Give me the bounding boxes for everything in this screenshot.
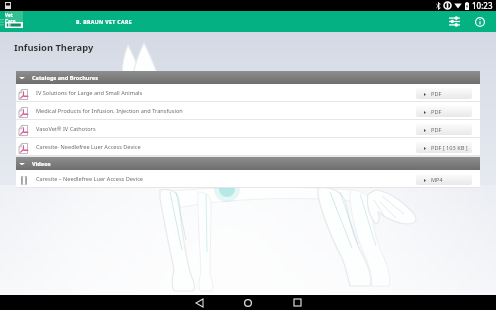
button[interactable]: Filter [444, 11, 464, 32]
button[interactable]: MP4 [416, 174, 472, 185]
button[interactable]: Home [233, 295, 263, 310]
button[interactable]: IV Solutions for Large and Small Animals [16, 84, 480, 102]
button[interactable]: PDF [416, 88, 472, 99]
staticText: Medical Products for Infusion, Injection… [36, 107, 183, 115]
button[interactable]: Videos [16, 157, 480, 170]
staticText: Caresite – Needlefree Luer Access Device [36, 175, 143, 183]
staticText: B. BRAUN VET CARE [76, 18, 132, 25]
staticText: Catalogs and Brochures [32, 74, 98, 82]
staticText: MP4 [431, 176, 443, 184]
button[interactable]: Menu [0, 16, 5, 28]
staticText: Videos [32, 160, 51, 168]
button[interactable]: Caresite – Needlefree Luer Access Device [16, 170, 480, 188]
staticText: VasoVet® IV Cathotors [36, 125, 96, 133]
button[interactable]: Info [470, 11, 490, 32]
button[interactable]: Caresite- Needlefree Luer Access Device [16, 138, 480, 156]
staticText: Vet Care [5, 12, 23, 23]
button[interactable]: Back [184, 295, 214, 310]
staticText: PDF [ 103 KB ] [431, 144, 468, 152]
button[interactable]: Recent apps [282, 295, 312, 310]
button[interactable]: VasoVet® IV Cathotors [16, 120, 480, 138]
button[interactable]: Medical Products for Infusion, Injection… [16, 102, 480, 120]
button[interactable]: PDF [416, 124, 472, 135]
staticText: 10:23 [472, 0, 493, 11]
staticText: IV Solutions for Large and Small Animals [36, 89, 143, 97]
staticText: PDF [431, 90, 442, 98]
staticText: PDF [431, 108, 442, 116]
button[interactable]: PDF [ 103 KB ] [416, 142, 472, 153]
button[interactable]: B Braun Vet Care logo [5, 11, 23, 32]
button[interactable]: PDF [416, 106, 472, 117]
staticText: PDF [431, 126, 442, 134]
staticText: Caresite- Needlefree Luer Access Device [36, 143, 141, 151]
button[interactable]: Catalogs and Brochures [16, 71, 480, 84]
staticText: Infusion Therapy [14, 41, 94, 54]
